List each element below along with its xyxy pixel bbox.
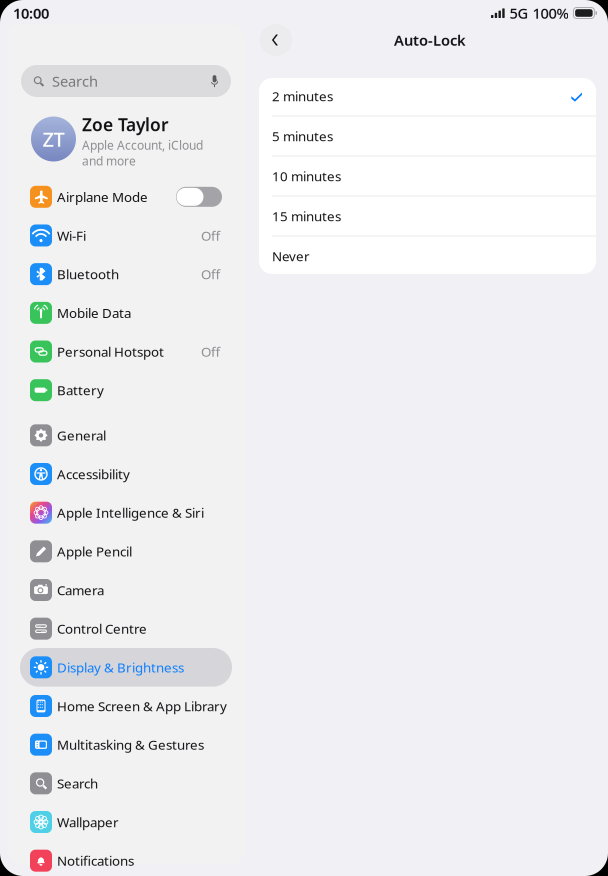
staticText: Search <box>57 774 98 792</box>
staticText: 5G 100% <box>509 3 568 23</box>
staticText: Apple Account, iCloud <box>82 137 203 153</box>
button[interactable]: 15 minutes <box>259 196 596 236</box>
button[interactable]: Home Screen & App Library <box>20 687 232 725</box>
staticText: and more <box>82 153 136 169</box>
staticText: Control Centre <box>57 620 147 637</box>
staticText: Multitasking & Gestures <box>57 736 204 753</box>
button[interactable]: Notifications <box>20 841 232 876</box>
staticText: Personal Hotspot <box>57 343 164 360</box>
button[interactable]: Wi-Fi <box>20 216 232 255</box>
button[interactable]: 10 minutes <box>259 156 596 196</box>
button[interactable]: Control Centre <box>20 609 232 648</box>
staticText: Off <box>201 265 220 283</box>
staticText: Mobile Data <box>57 304 131 322</box>
button[interactable]: Airplane Mode <box>20 177 232 216</box>
staticText: Display & Brightness <box>57 658 184 676</box>
staticText: Off <box>201 227 220 244</box>
staticText: 10 minutes <box>272 167 341 185</box>
button[interactable]: Wallpaper <box>20 803 232 841</box>
staticText: Accessibility <box>57 465 130 483</box>
button[interactable]: ZT <box>20 111 232 167</box>
staticText: 2 minutes <box>272 87 333 105</box>
staticText: Home Screen & App Library <box>57 697 227 715</box>
button[interactable]: Personal Hotspot <box>20 332 232 371</box>
button[interactable]: Accessibility <box>20 455 232 493</box>
button[interactable]: Search <box>20 764 232 803</box>
staticText: Wi-Fi <box>57 227 86 244</box>
button[interactable]: Camera <box>20 571 232 609</box>
staticText: 5 minutes <box>272 127 333 145</box>
staticText: 10:00 <box>13 3 49 23</box>
staticText: 15 minutes <box>272 207 341 225</box>
staticText: Search <box>52 71 98 91</box>
button[interactable]: 2 minutes <box>259 76 596 116</box>
staticText: Camera <box>57 581 104 599</box>
button[interactable]: Search <box>21 65 231 97</box>
staticText: Battery <box>57 381 104 399</box>
button[interactable]: Battery <box>20 371 232 409</box>
staticText: Auto-Lock <box>394 30 466 50</box>
button[interactable]: Apple Pencil <box>20 532 232 571</box>
staticText: Never <box>272 247 310 265</box>
staticText: Zoe Taylor <box>82 113 169 136</box>
staticText: ZT <box>42 126 64 152</box>
button[interactable]: Display & Brightness <box>20 648 232 687</box>
button[interactable]: 5 minutes <box>259 116 596 156</box>
staticText: Wallpaper <box>57 813 119 831</box>
staticText: Notifications <box>57 852 134 869</box>
button[interactable]: Back <box>260 24 292 56</box>
staticText: Airplane Mode <box>57 188 148 206</box>
button[interactable]: Apple Intelligence & Siri <box>20 493 232 532</box>
staticText: Bluetooth <box>57 265 119 283</box>
button[interactable]: Mobile Data <box>20 293 232 332</box>
button[interactable]: Never <box>259 236 596 276</box>
staticText: Off <box>201 343 220 360</box>
button[interactable]: General <box>20 416 232 455</box>
staticText: Apple Pencil <box>57 542 132 560</box>
staticText: General <box>57 426 106 444</box>
button[interactable]: Bluetooth <box>20 255 232 293</box>
staticText: Apple Intelligence & Siri <box>57 504 204 521</box>
button[interactable]: Multitasking & Gestures <box>20 725 232 764</box>
